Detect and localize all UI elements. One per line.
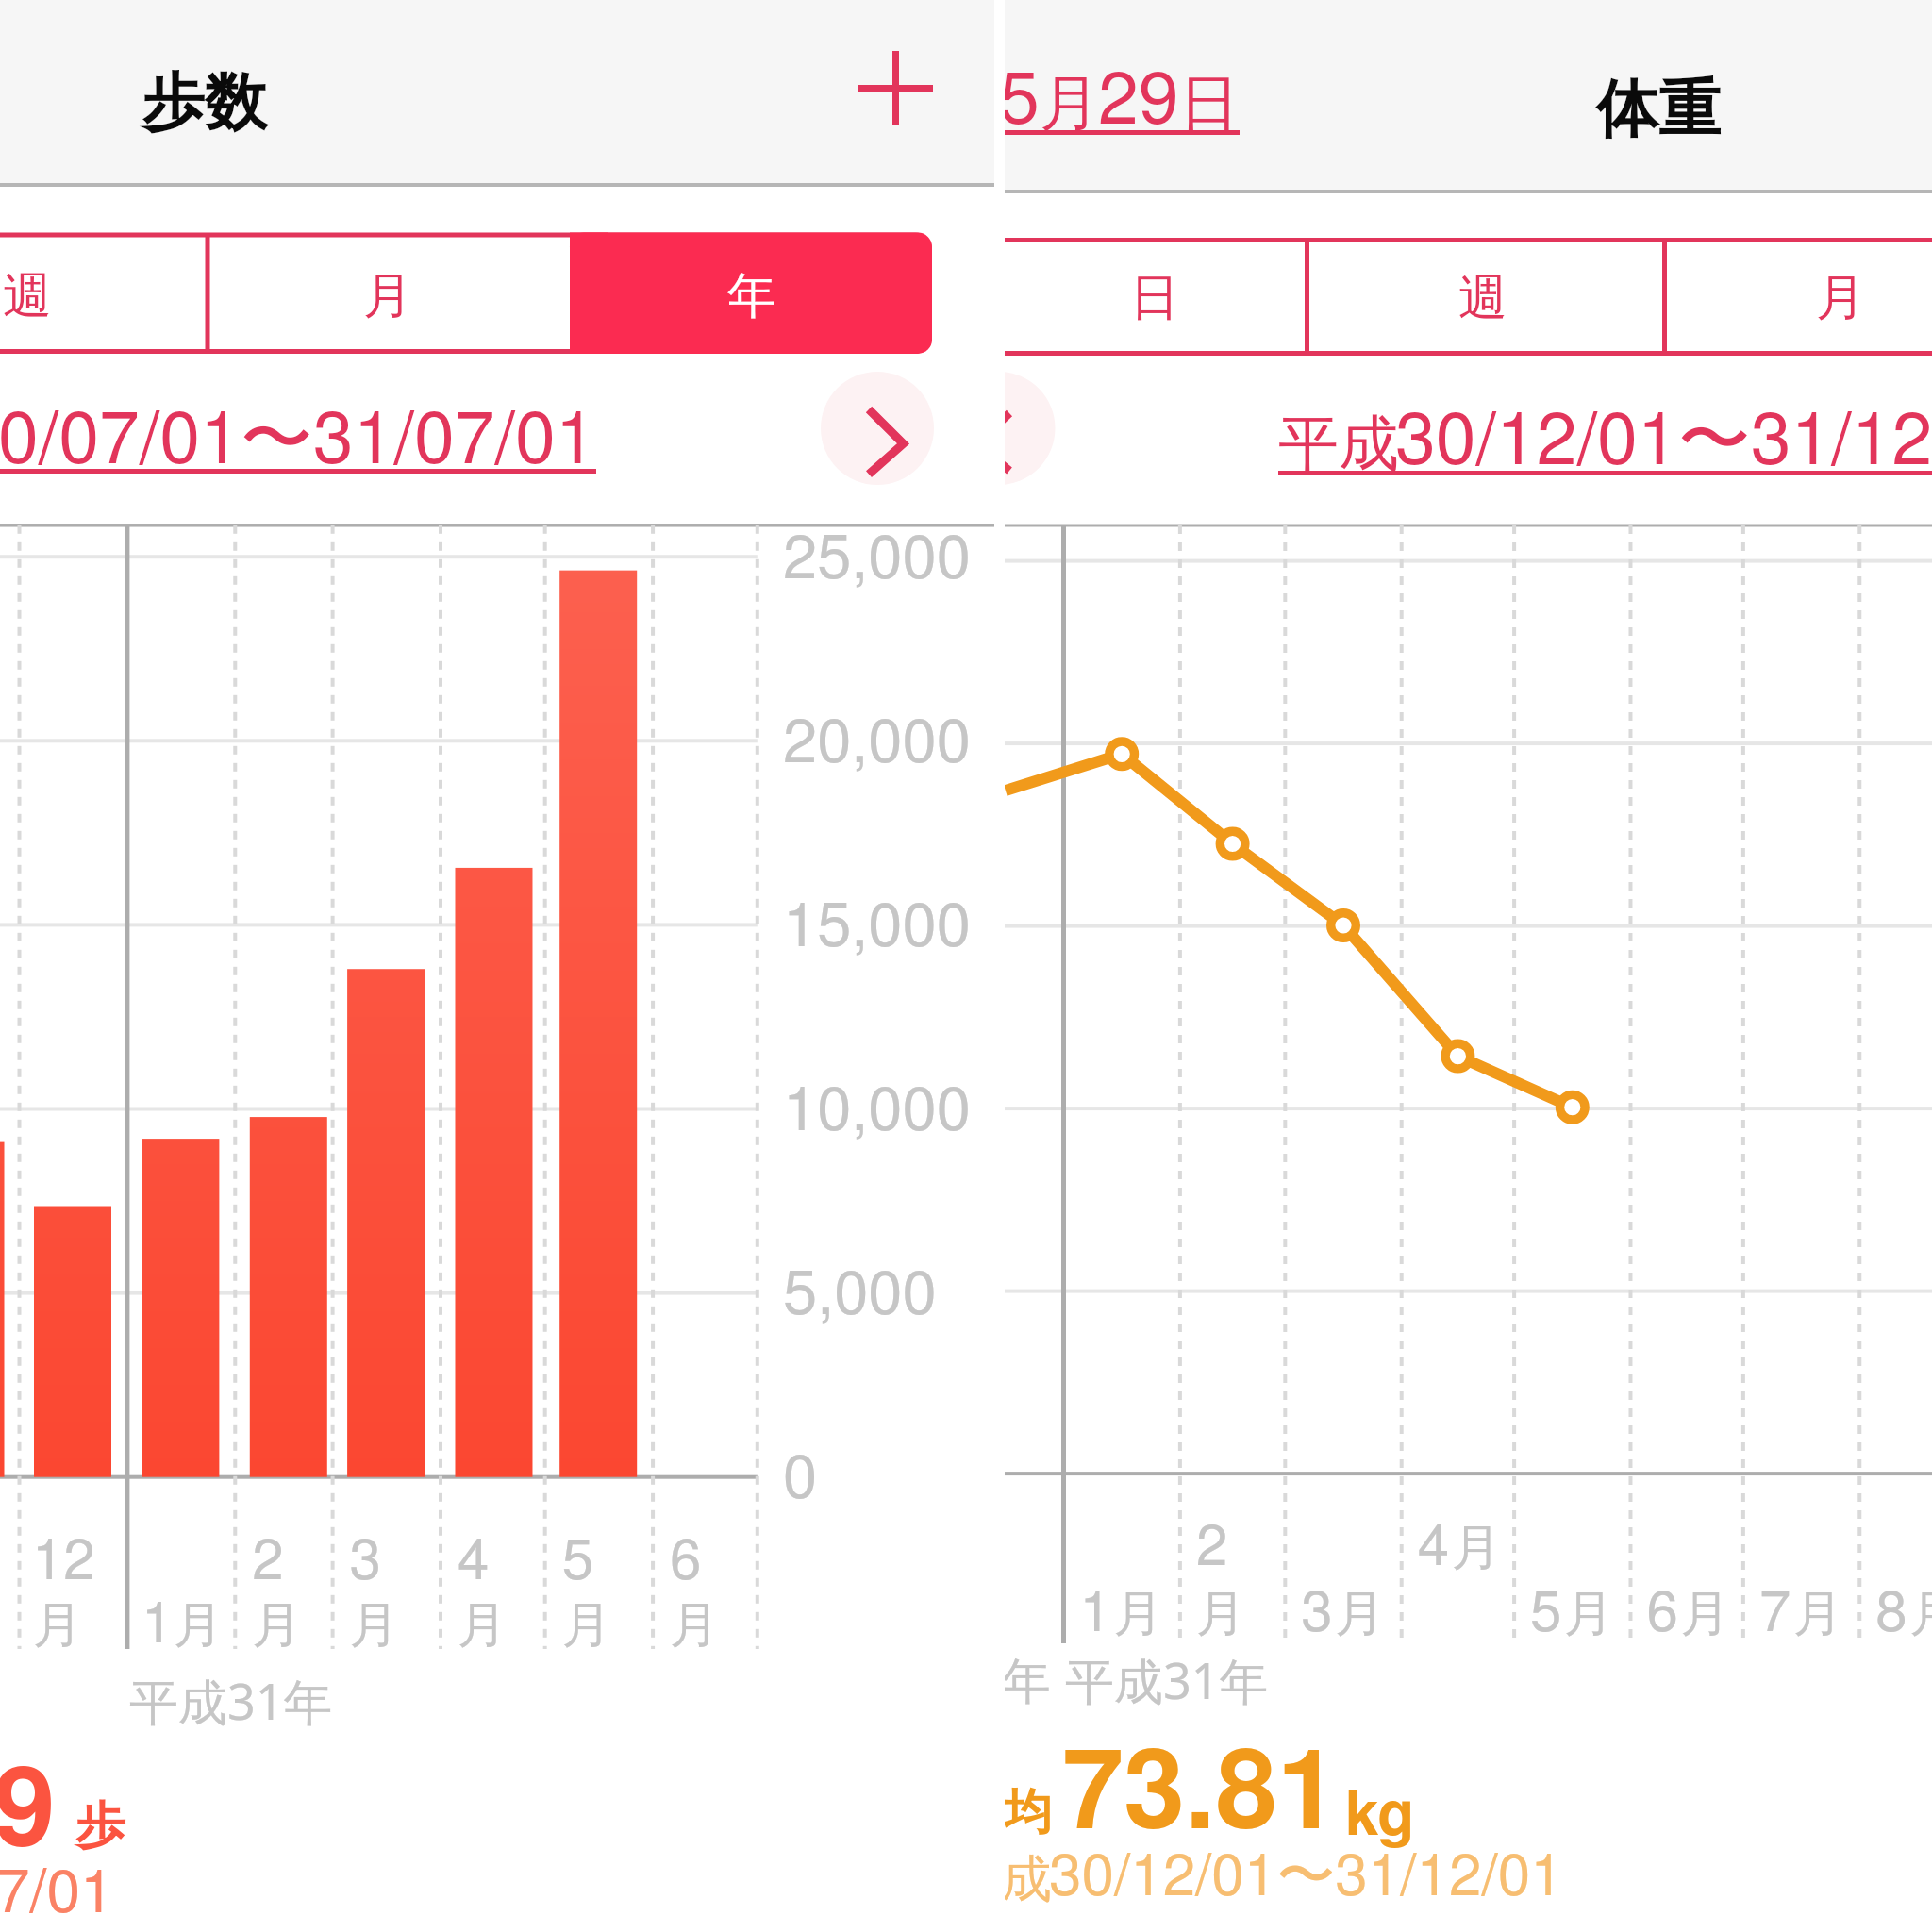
button[interactable]: [1305, 238, 1662, 357]
button[interactable]: [1662, 238, 1932, 357]
button[interactable]: データを追加: [844, 36, 948, 142]
button[interactable]: [1005, 238, 1305, 357]
button[interactable]: [1005, 38, 1259, 143]
button[interactable]: [207, 232, 571, 355]
button[interactable]: [0, 232, 207, 355]
button[interactable]: 次の期間: [788, 373, 897, 482]
button[interactable]: [1264, 377, 1932, 481]
button[interactable]: [0, 377, 660, 481]
button[interactable]: [571, 232, 933, 355]
